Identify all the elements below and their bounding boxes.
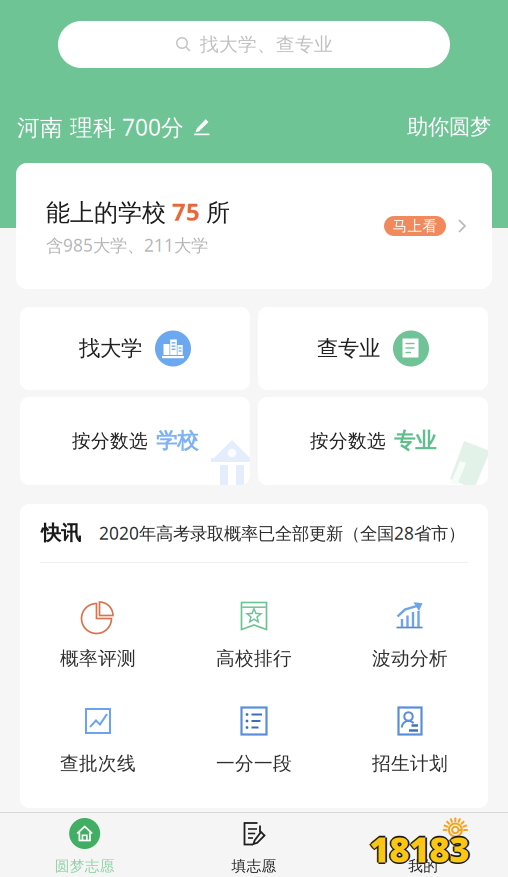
staticText: 概率评测 [60,647,136,670]
button[interactable]: 按分数选 [258,397,488,485]
staticText: 学校 [156,428,198,454]
staticText: 圆梦志愿 [55,857,115,875]
button[interactable]: 招生计划 [332,683,488,788]
button[interactable]: 概率评测 [20,578,176,683]
staticText: 专业 [394,428,436,454]
staticText: 马上看 [392,217,437,235]
staticText: 按分数选 [310,429,386,452]
button[interactable]: 查专业 [258,307,488,390]
staticText: 所 [206,198,230,227]
staticText: 高校排行 [216,647,292,670]
button[interactable]: 河南 理科 700分 [17,112,211,142]
staticText: 查专业 [317,335,380,362]
staticText: 河南 理科 700分 [17,112,184,142]
staticText: 18183 [369,826,469,872]
button[interactable]: 填志愿 [169,813,339,877]
staticText: 我的 [408,857,438,875]
staticText: 找大学 [79,335,142,362]
staticText: 助你圆梦 [407,114,491,140]
staticText: 能上的学校 [46,198,166,227]
staticText: 18183 [369,824,469,870]
staticText: 75 [172,195,200,227]
staticText: 快讯 [41,521,81,545]
staticText: 18183 [371,826,471,872]
button[interactable]: 快讯 [20,504,488,562]
staticText: 填志愿 [231,857,276,875]
button[interactable]: 我的 [339,813,508,877]
button[interactable]: 高校排行 [176,578,332,683]
staticText: 按分数选 [72,429,148,452]
staticText: 含985大学、211大学 [46,233,208,256]
button[interactable]: 波动分析 [332,578,488,683]
button[interactable]: 能上的学校 [16,163,492,289]
button[interactable]: 按分数选 [20,397,250,485]
button[interactable]: 找大学、查专业 [58,21,450,68]
staticText: 招生计划 [372,752,448,775]
button[interactable]: 助你圆梦 [407,114,491,140]
button[interactable]: 查批次线 [20,683,176,788]
staticText: 18183 [368,826,468,872]
staticText: 波动分析 [372,647,448,670]
staticText: 一分一段 [216,752,292,775]
staticText: 查批次线 [60,752,136,775]
button[interactable]: 找大学 [20,307,250,390]
staticText: 2020年高考录取概率已全部更新（全国28省市） [99,521,465,544]
button[interactable]: 一分一段 [176,683,332,788]
button[interactable]: 圆梦志愿 [0,813,169,877]
staticText: 18183 [369,828,469,874]
staticText: 找大学、查专业 [200,33,333,56]
